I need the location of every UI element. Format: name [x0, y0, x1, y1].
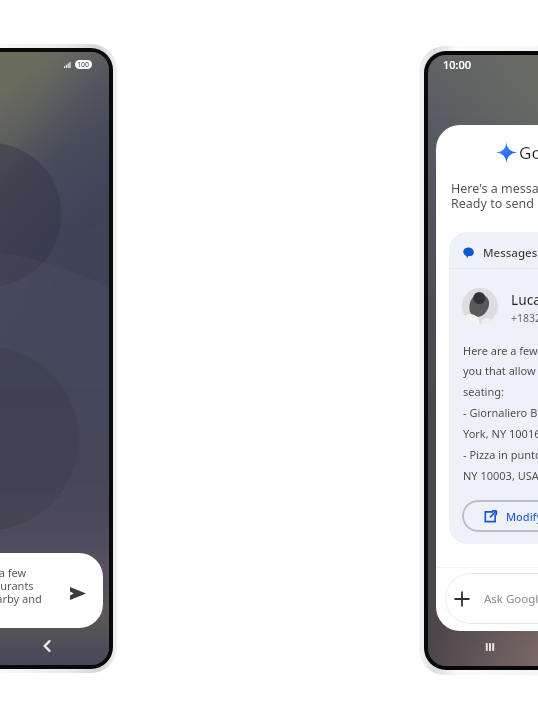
staticText: Italian restaurants: [0, 578, 34, 593]
button[interactable]: Google AI: [496, 141, 538, 164]
staticText: Here are a few restaurants near you that…: [463, 343, 538, 484]
button[interactable]: Can you find a few: [0, 553, 103, 628]
staticText: Google AI: [519, 141, 538, 164]
staticText: Messages: [483, 245, 538, 261]
button[interactable]: Send: [65, 580, 91, 606]
staticText: Can you find a few: [0, 565, 27, 580]
staticText: Modify: [506, 509, 538, 524]
button[interactable]: Back: [40, 638, 54, 654]
staticText: 10:00: [443, 57, 472, 72]
staticText: +18325550199: [511, 311, 538, 325]
button[interactable]: Recent apps: [483, 640, 497, 654]
button[interactable]: Modify: [462, 500, 538, 532]
button[interactable]: Messages: [463, 245, 538, 261]
button[interactable]: Ask Google AI: [445, 573, 538, 624]
staticText: that are nearby and: [0, 591, 42, 606]
staticText: Here's a message draft. Ready to send it…: [451, 180, 538, 212]
staticText: 100: [77, 60, 90, 69]
staticText: Ask Google AI: [484, 591, 538, 607]
staticText: Lucas: [511, 291, 538, 309]
